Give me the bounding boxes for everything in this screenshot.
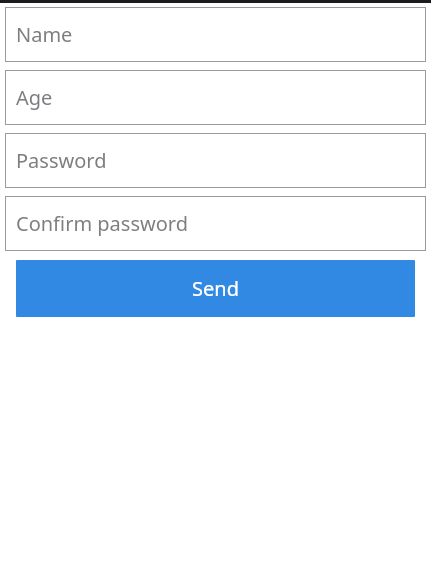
button[interactable]: Name — [5, 7, 426, 62]
staticText: Name — [16, 21, 73, 48]
button[interactable]: Confirm password — [5, 196, 426, 251]
button[interactable]: Password — [5, 133, 426, 188]
staticText: Password — [16, 147, 107, 174]
staticText: Confirm password — [16, 210, 188, 237]
button[interactable]: Send — [16, 260, 415, 317]
button[interactable]: Age — [5, 70, 426, 125]
staticText: Send — [192, 275, 239, 302]
staticText: Age — [16, 84, 53, 111]
